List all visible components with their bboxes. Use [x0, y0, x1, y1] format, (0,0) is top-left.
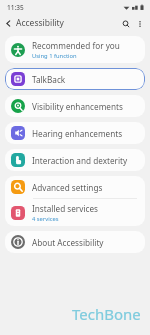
staticText: TalkBack — [32, 74, 66, 85]
staticText: Using 1 function — [32, 52, 77, 60]
button[interactable]: More options — [133, 17, 146, 30]
button[interactable]: Hearing enhancements — [5, 122, 145, 144]
staticText: Hearing enhancements — [32, 128, 123, 139]
staticText: Interaction and dexterity — [32, 155, 128, 166]
staticText: Advanced settings — [32, 182, 103, 193]
button[interactable]: Visibility enhancements — [5, 95, 145, 117]
button[interactable]: About Accessibility — [5, 231, 145, 253]
button[interactable]: Installed services — [5, 199, 145, 226]
button[interactable]: Search — [118, 16, 133, 31]
button[interactable]: Recommended for you — [5, 36, 145, 63]
button[interactable]: Advanced settings — [5, 176, 145, 198]
button[interactable]: TalkBack — [5, 68, 145, 90]
button[interactable]: Interaction and dexterity — [5, 149, 145, 171]
staticText: Visibility enhancements — [32, 101, 123, 112]
staticText: 4 services — [32, 215, 59, 223]
staticText: 11:35 — [7, 3, 24, 12]
button[interactable]: Back — [0, 15, 16, 31]
staticText: Recommended for you — [32, 40, 120, 51]
staticText: Accessibility — [16, 17, 64, 29]
staticText: TechBone — [72, 304, 141, 324]
staticText: About Accessibility — [32, 237, 104, 248]
staticText: Installed services — [32, 203, 98, 214]
